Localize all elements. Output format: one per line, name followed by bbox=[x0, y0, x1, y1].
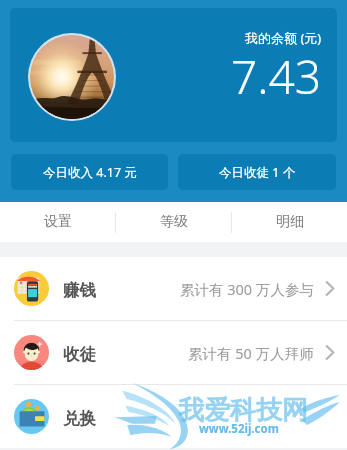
button[interactable]: Profile photo bbox=[10, 8, 337, 142]
staticText: 赚钱 bbox=[63, 280, 96, 301]
staticText: 等级 bbox=[160, 213, 188, 231]
button[interactable]: 设置 bbox=[0, 202, 115, 242]
staticText: 我爱科技网 bbox=[178, 394, 308, 427]
button[interactable]: 明细 bbox=[232, 202, 347, 242]
staticText: 我的余额 (元) bbox=[245, 29, 322, 47]
staticText: 累计有 300 万人参与 bbox=[180, 279, 314, 299]
button[interactable]: 赚钱 bbox=[0, 257, 347, 320]
button[interactable]: 今日收入 4.17 元 bbox=[11, 154, 168, 190]
staticText: 7.43 bbox=[231, 45, 322, 108]
button[interactable]: 等级 bbox=[116, 202, 231, 242]
staticText: 收徒 bbox=[63, 344, 96, 365]
button[interactable]: Profile photo bbox=[30, 35, 114, 119]
button[interactable]: 兑换 bbox=[0, 385, 347, 448]
staticText: 设置 bbox=[44, 213, 72, 231]
staticText: 今日收徒 1 个 bbox=[219, 164, 296, 181]
button[interactable]: 今日收徒 1 个 bbox=[178, 154, 336, 190]
staticText: 兑换 bbox=[63, 408, 96, 429]
button[interactable]: 收徒 bbox=[0, 321, 347, 384]
staticText: www.52ij.com bbox=[199, 421, 279, 437]
staticText: 今日收入 4.17 元 bbox=[43, 164, 137, 181]
staticText: 明细 bbox=[276, 213, 304, 231]
staticText: 累计有 50 万人拜师 bbox=[188, 343, 314, 363]
